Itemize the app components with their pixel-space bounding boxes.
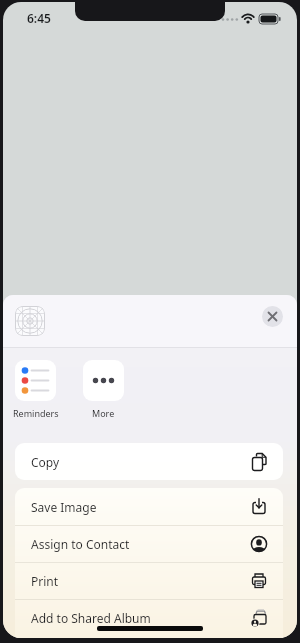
button[interactable] — [15, 306, 45, 336]
staticText: Assign to Contact — [31, 536, 130, 552]
button[interactable]: Add to Shared Album — [15, 599, 283, 636]
staticText: More — [92, 407, 115, 419]
button[interactable]: Print — [15, 562, 283, 599]
staticText: Copy — [31, 454, 60, 470]
button[interactable]: Assign to Contact — [15, 525, 283, 562]
staticText: Print — [31, 573, 59, 589]
staticText: Save Image — [31, 499, 97, 515]
staticText: 6:45 — [27, 10, 51, 26]
button[interactable]: Reminders — [15, 360, 56, 418]
button[interactable]: Copy — [15, 443, 283, 480]
button[interactable]: More — [83, 360, 124, 418]
button[interactable]: Save Image — [15, 488, 283, 525]
staticText: Add to Shared Album — [31, 610, 151, 626]
staticText: Reminders — [13, 407, 59, 419]
button[interactable] — [262, 306, 283, 327]
